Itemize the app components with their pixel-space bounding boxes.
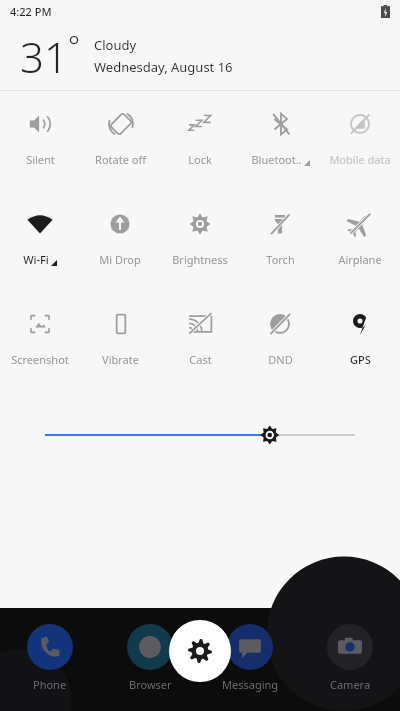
staticText: Camera	[330, 677, 371, 692]
staticText: GPS	[350, 352, 371, 367]
button[interactable]: Messaging	[200, 620, 300, 692]
staticText: Screenshot	[11, 352, 69, 367]
staticText: DND	[268, 352, 293, 367]
staticText: Messaging	[222, 677, 279, 692]
staticText: Bluetoot..	[251, 152, 302, 167]
staticText: Rotate off	[95, 152, 146, 167]
button[interactable]: Cast	[160, 309, 240, 367]
staticText: Wi-Fi	[23, 252, 49, 267]
button[interactable]: Browser	[100, 620, 200, 692]
staticText: Mi Drop	[99, 252, 141, 267]
staticText: Airplane	[338, 252, 382, 267]
staticText: Cloudy	[94, 36, 137, 54]
button[interactable]: Bluetoot..	[240, 109, 320, 167]
button[interactable]: Lock	[160, 109, 240, 167]
staticText: Cast	[189, 352, 212, 367]
staticText: Lock	[188, 152, 212, 167]
button[interactable]: Phone	[0, 620, 100, 692]
staticText: Browser	[129, 677, 172, 692]
button[interactable]: Mobile data	[320, 109, 400, 167]
button[interactable]: GPS	[320, 309, 400, 367]
staticText: °	[68, 26, 80, 64]
staticText: Silent	[26, 152, 55, 167]
staticText: Brightness	[172, 252, 228, 267]
button[interactable]: Vibrate	[80, 309, 160, 367]
button[interactable]: Mi Drop	[80, 209, 160, 267]
staticText: 31	[20, 28, 68, 85]
button[interactable]: Settings	[169, 620, 231, 682]
button[interactable]: Screenshot	[0, 309, 80, 367]
button[interactable]: 31	[0, 22, 400, 90]
button[interactable]: Silent	[0, 109, 80, 167]
button[interactable]: Brightness	[160, 209, 240, 267]
staticText: Phone	[33, 677, 67, 692]
button[interactable]: Wi-Fi	[0, 209, 80, 267]
button[interactable]: Rotate off	[80, 109, 160, 167]
button[interactable]: Brightness slider	[0, 415, 400, 455]
staticText: Mobile data	[329, 152, 391, 167]
staticText: 4:22 PM	[10, 4, 52, 19]
button[interactable]: DND	[240, 309, 320, 367]
staticText: Vibrate	[102, 352, 139, 367]
button[interactable]: Torch	[240, 209, 320, 267]
button[interactable]: Camera	[300, 620, 400, 692]
staticText: Torch	[266, 252, 295, 267]
staticText: Wednesday, August 16	[94, 58, 233, 76]
button[interactable]: Airplane	[320, 209, 400, 267]
